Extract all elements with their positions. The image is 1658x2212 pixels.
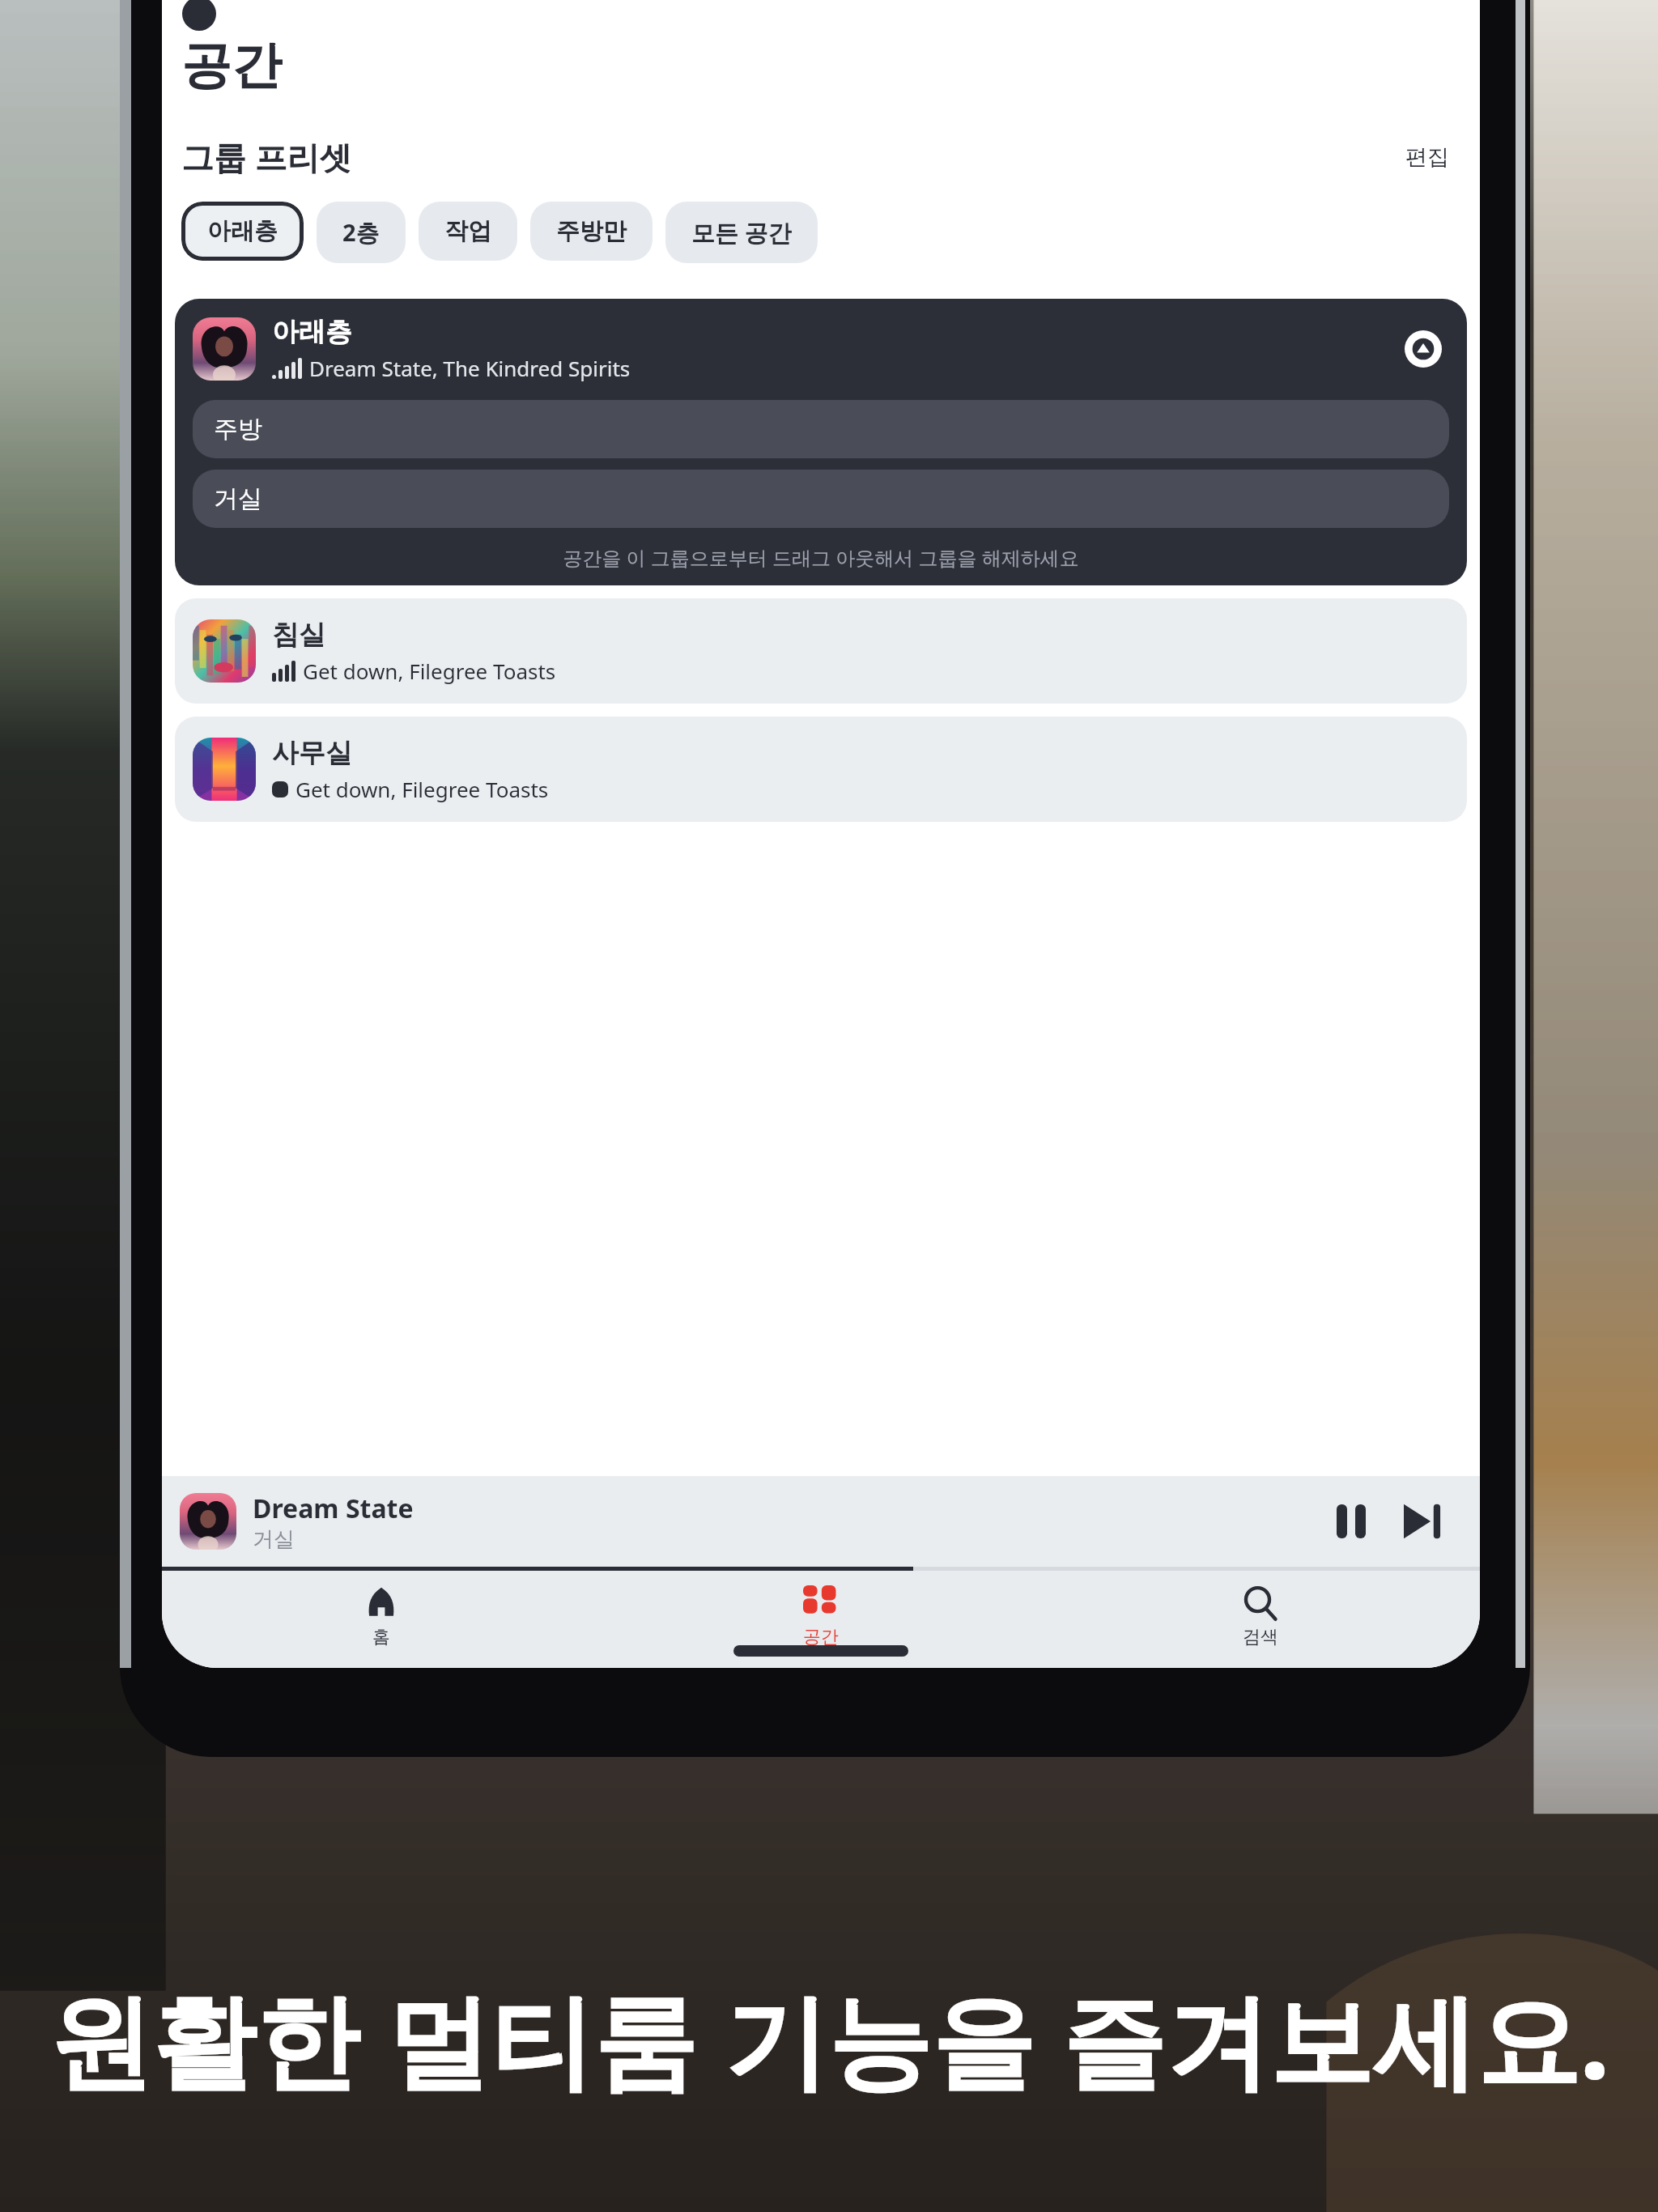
staticText: 모든 공간 xyxy=(691,216,792,249)
staticText: 주방 xyxy=(214,414,262,445)
staticText: 2층 xyxy=(342,216,380,249)
button[interactable]: 작업 xyxy=(419,202,517,261)
staticText: 검색 xyxy=(1243,1626,1278,1648)
button[interactable]: 검색 xyxy=(1040,1582,1480,1652)
button[interactable]: Pause xyxy=(1320,1490,1383,1553)
staticText: 공간 xyxy=(803,1626,839,1648)
button[interactable]: 홈 xyxy=(162,1582,601,1652)
staticText: 침실 xyxy=(272,618,325,652)
staticText: 거실 xyxy=(253,1526,295,1553)
button[interactable]: 주방 xyxy=(193,400,1449,458)
staticText: 그룹 프리셋 xyxy=(181,134,352,179)
button[interactable]: Dream State xyxy=(162,1476,1480,1567)
button[interactable]: 침실 xyxy=(175,598,1467,704)
button[interactable]: 편집 xyxy=(1397,138,1457,176)
staticText: 편집 xyxy=(1405,143,1449,171)
staticText: 아래층 xyxy=(207,216,278,246)
staticText: Dream State, The Kindred Spirits xyxy=(309,354,631,382)
button[interactable]: 사무실 xyxy=(175,717,1467,822)
staticText: Get down, Filegree Toasts xyxy=(303,657,556,685)
staticText: 원활한 멀티룸 기능을 즐겨보세요. xyxy=(0,1967,1658,2109)
button[interactable]: 주방만 xyxy=(530,202,653,261)
button[interactable]: 모든 공간 xyxy=(665,202,818,263)
button[interactable]: 공간 xyxy=(601,1582,1040,1652)
button[interactable]: Group toggle xyxy=(1397,323,1449,375)
button[interactable]: 아래층 xyxy=(175,299,1467,585)
button[interactable]: 거실 xyxy=(193,470,1449,528)
button[interactable]: 아래층 xyxy=(181,202,304,261)
staticText: 작업 xyxy=(444,216,491,246)
staticText: 홈 xyxy=(372,1626,390,1648)
staticText: 공간을 이 그룹으로부터 드래그 아웃해서 그룹을 해제하세요 xyxy=(193,544,1449,571)
button[interactable]: Next track xyxy=(1391,1490,1454,1553)
staticText: 주방만 xyxy=(556,216,627,246)
staticText: 아래층 xyxy=(272,315,352,349)
staticText: 공간 xyxy=(181,34,282,97)
staticText: Get down, Filegree Toasts xyxy=(295,775,549,803)
button[interactable]: 2층 xyxy=(317,202,406,263)
staticText: 사무실 xyxy=(272,736,352,770)
staticText: Dream State xyxy=(253,1491,414,1526)
staticText: 거실 xyxy=(214,483,262,514)
